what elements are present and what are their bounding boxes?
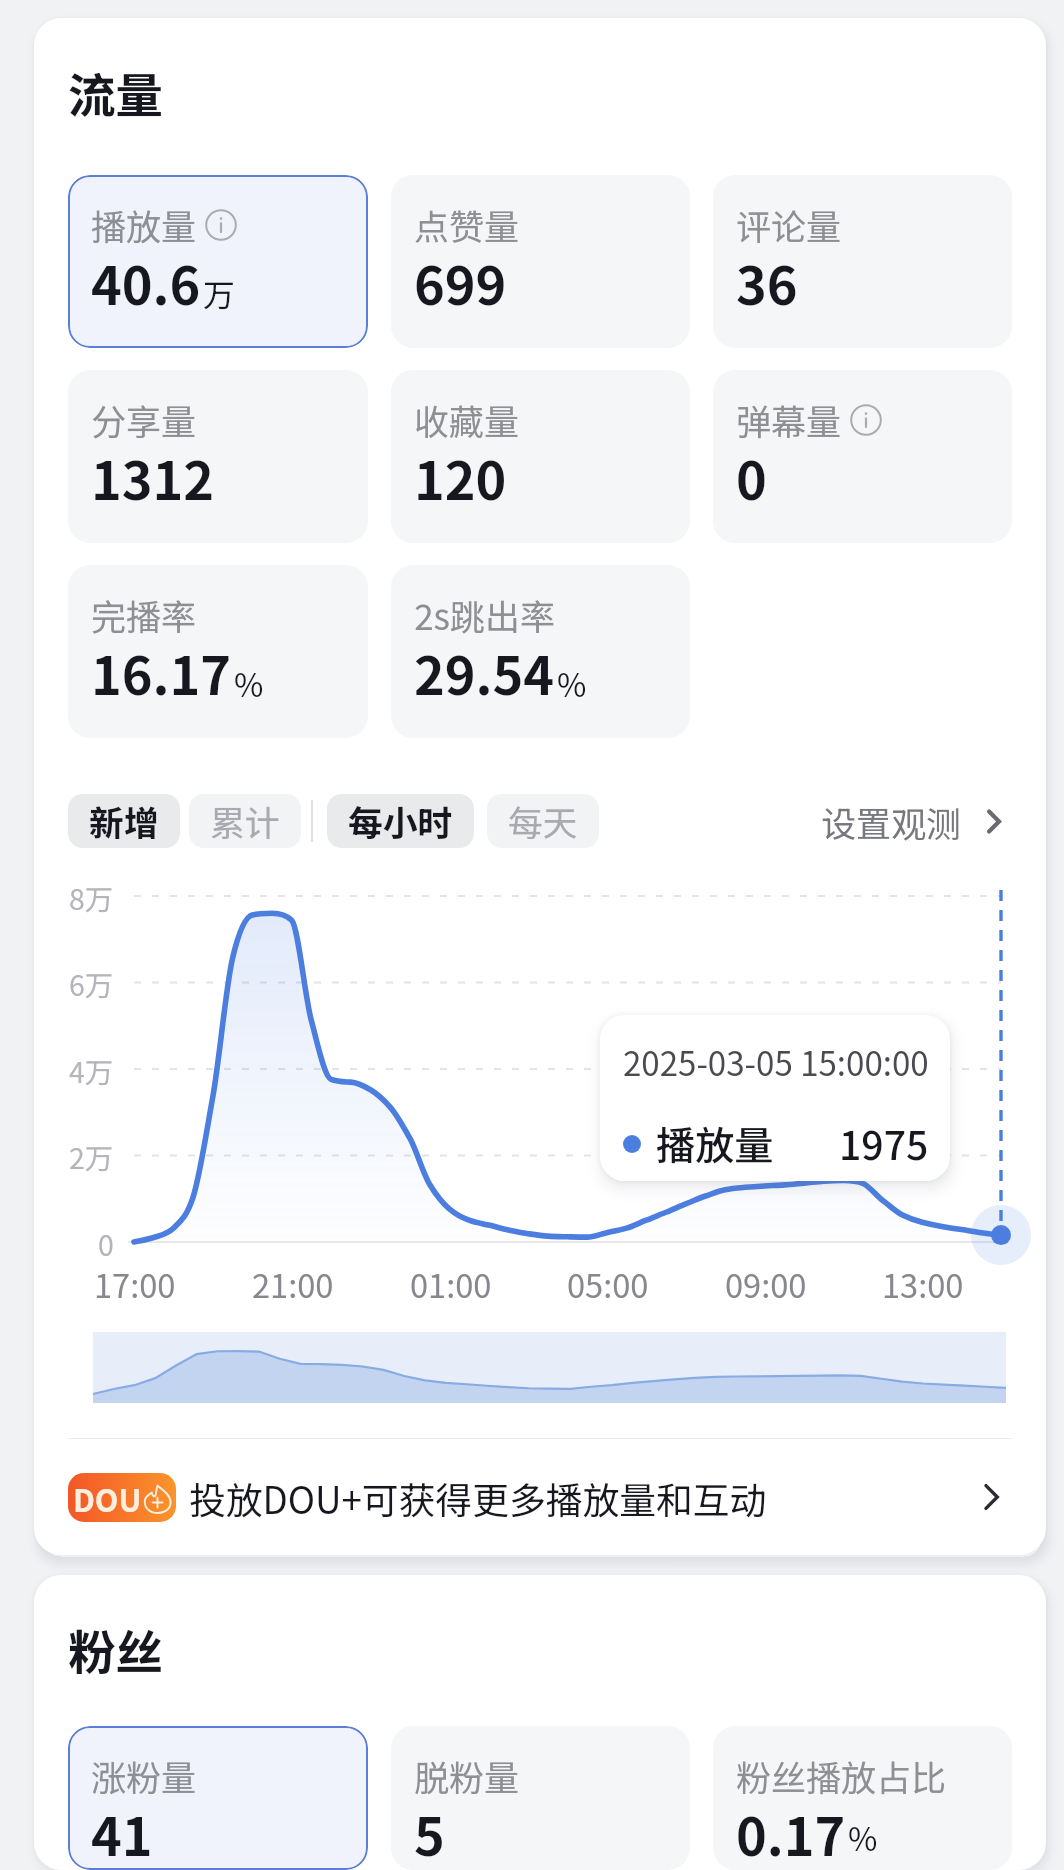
staticText: 新增 <box>89 796 159 846</box>
staticText: 29.54 <box>414 634 555 710</box>
staticText: 分享量 <box>91 394 197 445</box>
staticText: 41 <box>91 1795 153 1864</box>
button[interactable]: 收藏量 <box>391 370 690 543</box>
button[interactable]: DOU+ <box>68 1439 1012 1555</box>
staticText: 涨粉量 <box>91 1750 197 1801</box>
staticText: 8万 <box>69 877 114 918</box>
staticText: 2万 <box>69 1136 114 1177</box>
staticText: 120 <box>414 439 507 515</box>
button[interactable]: 累计 <box>189 794 301 848</box>
staticText: 粉丝播放占比 <box>736 1750 947 1801</box>
staticText: 收藏量 <box>414 394 520 445</box>
staticText: 脱粉量 <box>414 1750 520 1801</box>
staticText: 0 <box>98 1223 114 1264</box>
staticText: 评论量 <box>736 199 842 250</box>
button[interactable]: 涨粉量 <box>68 1726 368 1870</box>
staticText: % <box>848 1814 878 1860</box>
button[interactable]: 设置观测 <box>821 796 1012 847</box>
staticText: 6万 <box>69 963 114 1004</box>
staticText: 累计 <box>210 796 280 846</box>
staticText: 16.17 <box>91 634 232 710</box>
button[interactable]: 播放量 <box>68 175 368 348</box>
staticText: 0 <box>736 439 767 515</box>
button[interactable]: 粉丝播放占比 <box>713 1726 1012 1870</box>
staticText: 05:00 <box>567 1260 649 1307</box>
button[interactable]: 2s跳出率 <box>391 565 690 738</box>
staticText: 01:00 <box>410 1260 492 1307</box>
staticText: 每天 <box>508 796 578 846</box>
staticText: 699 <box>414 244 507 320</box>
button[interactable]: 弹幕量 <box>713 370 1012 543</box>
staticText: 21:00 <box>252 1260 334 1307</box>
staticText: 播放量 <box>91 199 197 250</box>
staticText: 粉丝 <box>68 1615 164 1684</box>
staticText: 1975 <box>839 1115 929 1172</box>
staticText: % <box>234 660 264 706</box>
button[interactable]: 每小时 <box>327 794 474 848</box>
staticText: 弹幕量 <box>736 394 842 445</box>
staticText: 1312 <box>91 439 215 515</box>
other: DOU+ <box>68 1473 176 1522</box>
staticText: 09:00 <box>725 1260 807 1307</box>
staticText: 完播率 <box>91 589 197 640</box>
button[interactable]: 评论量 <box>713 175 1012 348</box>
staticText: 投放DOU+可获得更多播放量和互动 <box>189 1471 767 1524</box>
staticText: 2s跳出率 <box>414 589 555 640</box>
staticText: DOU <box>73 1476 142 1520</box>
staticText: 万 <box>203 270 235 316</box>
button[interactable]: 点赞量 <box>391 175 690 348</box>
staticText: 13:00 <box>882 1260 964 1307</box>
staticText: 2025-03-05 15:00:00 <box>623 1038 929 1086</box>
staticText: 0.17 <box>736 1795 846 1864</box>
staticText: 播放量 <box>656 1115 774 1172</box>
button[interactable]: 新增 <box>68 794 180 848</box>
staticText: 36 <box>736 244 798 320</box>
button[interactable]: 每天 <box>487 794 599 848</box>
staticText: 点赞量 <box>414 199 520 250</box>
button[interactable]: 完播率 <box>68 565 368 738</box>
staticText: 5 <box>414 1795 445 1864</box>
button[interactable]: 分享量 <box>68 370 368 543</box>
staticText: % <box>557 660 587 706</box>
staticText: 4万 <box>69 1050 114 1091</box>
staticText: 17:00 <box>94 1260 176 1307</box>
staticText: 流量 <box>68 58 164 127</box>
staticText: 设置观测 <box>821 796 962 847</box>
button[interactable]: 脱粉量 <box>391 1726 690 1870</box>
staticText: 每小时 <box>348 796 453 846</box>
staticText: 40.6 <box>91 244 201 320</box>
